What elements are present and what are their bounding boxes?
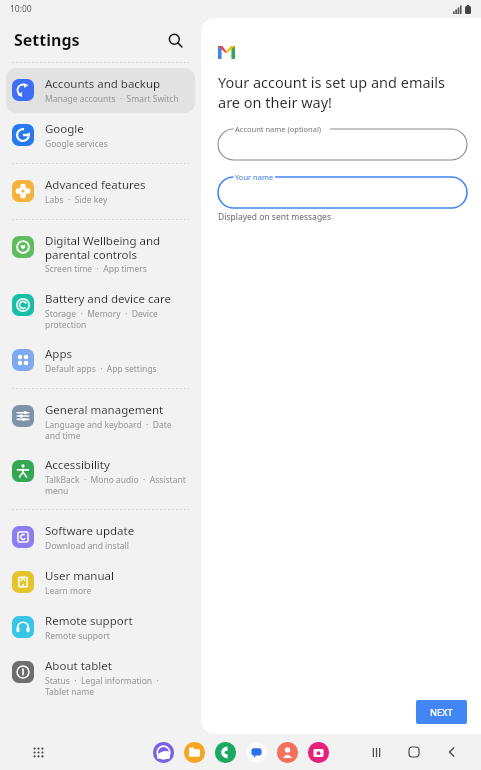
button[interactable]: NEXT bbox=[416, 700, 467, 724]
staticText: Digital Wellbeing and parental controls bbox=[45, 233, 187, 262]
button[interactable]: Back bbox=[441, 741, 463, 763]
staticText: Battery and device care bbox=[45, 291, 172, 307]
button[interactable]: Your name bbox=[218, 172, 467, 208]
staticText: Settings bbox=[14, 29, 80, 51]
staticText: Language and keyboard · Date and time bbox=[45, 419, 187, 441]
button[interactable]: Gallery bbox=[307, 741, 329, 763]
staticText: Labs · Side key bbox=[45, 194, 108, 206]
staticText: TalkBack · Mono audio · Assistant menu bbox=[45, 474, 187, 496]
button[interactable]: Software update bbox=[6, 515, 195, 560]
button[interactable]: User manual bbox=[6, 560, 195, 605]
button[interactable]: All apps bbox=[26, 740, 50, 764]
button[interactable]: About tablet bbox=[6, 650, 195, 705]
button[interactable]: Remote support bbox=[6, 605, 195, 650]
staticText: Learn more bbox=[45, 585, 92, 597]
staticText: Software update bbox=[45, 523, 135, 539]
staticText: Your name bbox=[235, 172, 274, 182]
staticText: Apps bbox=[45, 346, 73, 362]
button[interactable]: Google bbox=[6, 113, 195, 158]
button[interactable]: Apps bbox=[6, 338, 195, 383]
button[interactable]: Home bbox=[403, 741, 425, 763]
button[interactable]: Messages bbox=[245, 741, 267, 763]
staticText: Manage accounts · Smart Switch bbox=[45, 93, 179, 105]
staticText: NEXT bbox=[430, 706, 453, 718]
button[interactable]: Browser bbox=[152, 741, 174, 763]
staticText: General management bbox=[45, 402, 164, 418]
staticText: Your account is set up and emails are on… bbox=[218, 72, 467, 112]
staticText: About tablet bbox=[45, 658, 112, 674]
staticText: 10:00 bbox=[10, 3, 32, 15]
button[interactable]: Account name (optional) bbox=[218, 124, 467, 160]
staticText: Accounts and backup bbox=[45, 76, 161, 92]
staticText: Google bbox=[45, 121, 84, 137]
staticText: Remote support bbox=[45, 630, 110, 642]
staticText: Storage · Memory · Device protection bbox=[45, 308, 187, 330]
button[interactable]: Phone bbox=[214, 741, 236, 763]
staticText: Displayed on sent messages bbox=[218, 211, 331, 223]
staticText: User manual bbox=[45, 568, 114, 584]
button[interactable]: Contacts bbox=[276, 741, 298, 763]
staticText: Advanced features bbox=[45, 177, 146, 193]
button[interactable]: Digital Wellbeing and parental controls bbox=[6, 225, 195, 283]
button[interactable]: Files bbox=[183, 741, 205, 763]
button[interactable]: Accounts and backup bbox=[6, 68, 195, 113]
staticText: Default apps · App settings bbox=[45, 363, 157, 375]
button[interactable]: Battery and device care bbox=[6, 283, 195, 338]
staticText: Account name (optional) bbox=[235, 124, 322, 134]
button[interactable]: General management bbox=[6, 394, 195, 449]
staticText: Status · Legal information · Tablet name bbox=[45, 675, 187, 697]
button[interactable]: Advanced features bbox=[6, 169, 195, 214]
button[interactable]: Accessibility bbox=[6, 449, 195, 504]
staticText: Accessibility bbox=[45, 457, 110, 473]
staticText: Screen time · App timers bbox=[45, 263, 147, 275]
button[interactable]: Recents bbox=[365, 741, 387, 763]
button[interactable]: Search bbox=[163, 28, 187, 52]
staticText: Remote support bbox=[45, 613, 133, 629]
staticText: Download and install bbox=[45, 540, 129, 552]
staticText: Google services bbox=[45, 138, 108, 150]
